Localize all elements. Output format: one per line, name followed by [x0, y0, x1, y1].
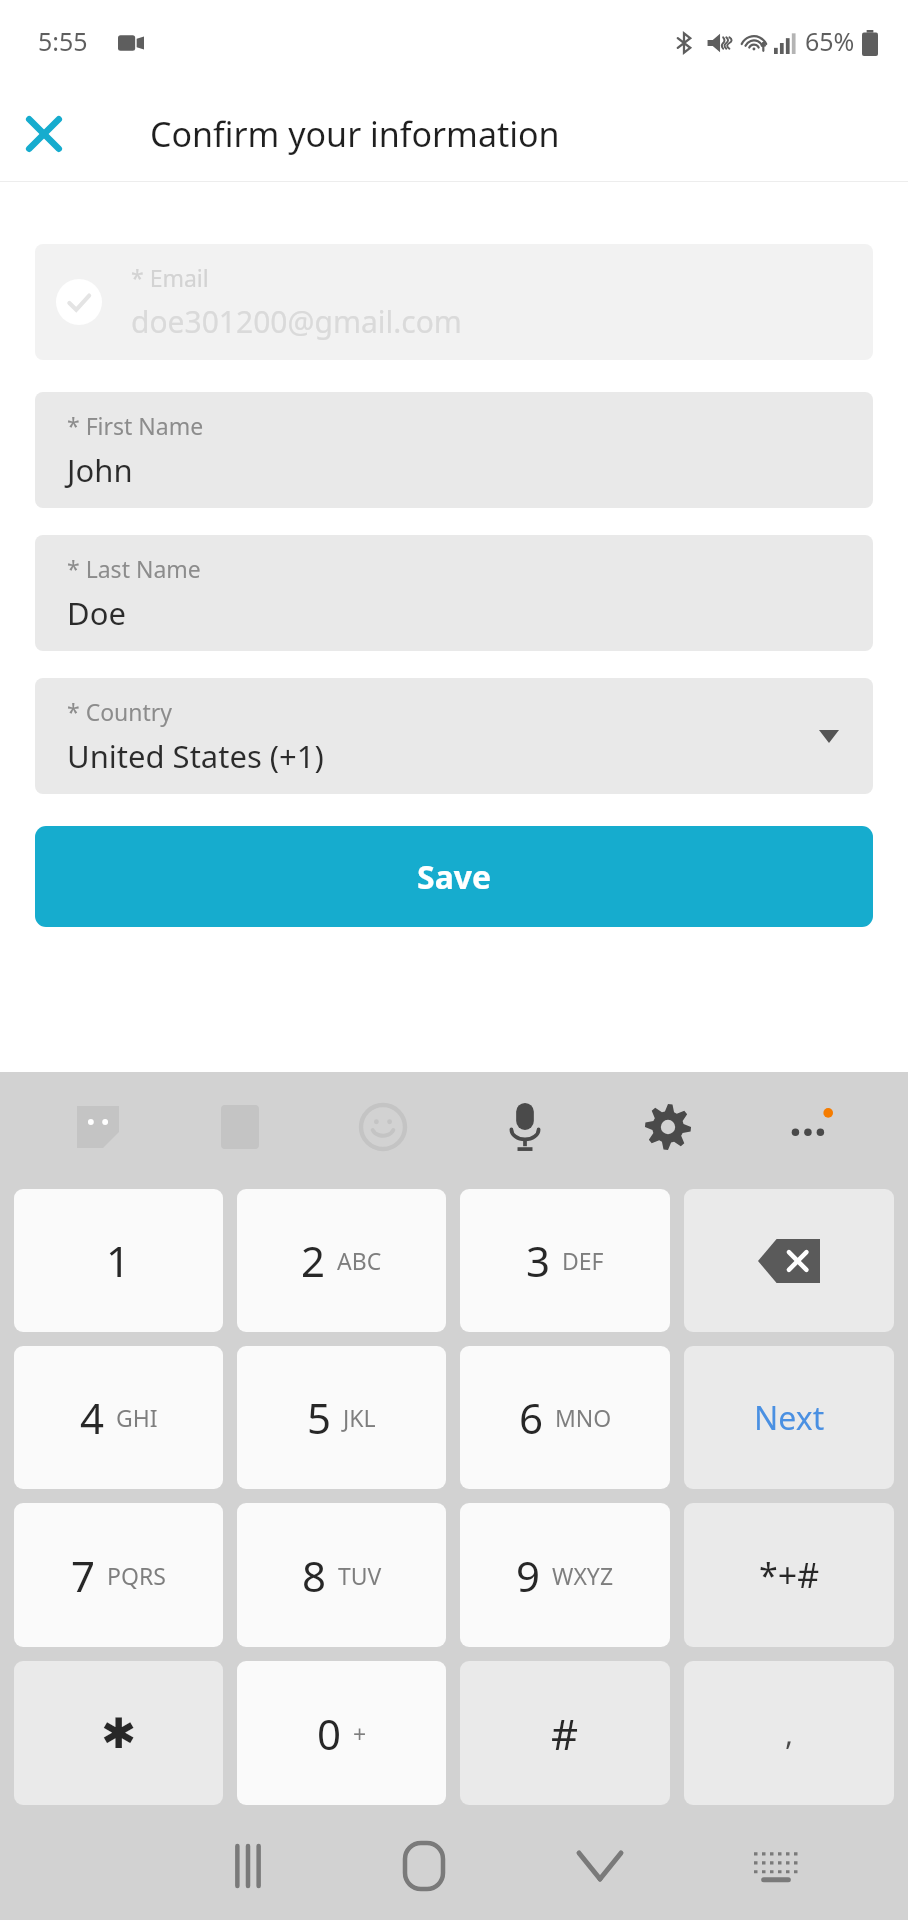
button[interactable]: GIF — [195, 1082, 285, 1172]
staticText: Doe — [67, 592, 126, 634]
button[interactable]: 9 — [460, 1503, 670, 1647]
button[interactable]: 8 — [237, 1503, 446, 1647]
staticText: 2 — [301, 1232, 326, 1289]
button[interactable]: Next — [684, 1346, 894, 1489]
staticText: 8 — [302, 1547, 327, 1604]
staticText: 65% — [805, 24, 855, 58]
button[interactable]: * Last Name — [35, 535, 873, 651]
staticText: PQRS — [107, 1560, 166, 1591]
button[interactable]: 3 — [460, 1189, 670, 1332]
staticText: DEF — [562, 1245, 604, 1276]
button[interactable]: 6 — [460, 1346, 670, 1489]
staticText: Save — [417, 855, 492, 899]
button[interactable]: * Email — [35, 244, 873, 360]
button[interactable]: Stickers — [53, 1082, 143, 1172]
button[interactable]: 2 — [237, 1189, 446, 1332]
staticText: ABC — [337, 1245, 382, 1276]
staticText: 3 — [526, 1232, 551, 1289]
staticText: TUV — [338, 1560, 382, 1591]
staticText: *+# — [759, 1552, 820, 1598]
staticText: * Country — [67, 696, 173, 727]
button[interactable]: More options — [765, 1082, 855, 1172]
staticText: 4 — [80, 1389, 105, 1446]
staticText: United States (+1) — [67, 735, 324, 777]
staticText: John — [67, 449, 133, 491]
button[interactable]: Emoji — [338, 1082, 428, 1172]
staticText: 5:55 — [38, 24, 88, 58]
staticText: 6 — [519, 1389, 544, 1446]
staticText: # — [551, 1705, 579, 1762]
button[interactable]: 7 — [14, 1503, 223, 1647]
staticText: Confirm your information — [150, 111, 560, 157]
staticText: 5 — [307, 1389, 332, 1446]
button[interactable]: * Country — [35, 678, 873, 794]
button[interactable]: Keyboard settings — [623, 1082, 713, 1172]
staticText: 1 — [106, 1232, 131, 1289]
button[interactable]: *+# — [684, 1503, 894, 1647]
button[interactable]: # — [460, 1661, 670, 1805]
staticText: , — [785, 1713, 794, 1754]
button[interactable]: , — [684, 1661, 894, 1805]
staticText: * First Name — [67, 410, 204, 441]
staticText: * Last Name — [67, 553, 201, 584]
staticText: + — [353, 1718, 367, 1749]
button[interactable]: Home — [336, 1812, 512, 1920]
staticText: 9 — [516, 1547, 541, 1604]
staticText: * Email — [131, 262, 209, 293]
button[interactable]: Hide keyboard — [512, 1812, 688, 1920]
button[interactable]: 4 — [14, 1346, 223, 1489]
button[interactable]: 0 — [237, 1661, 446, 1805]
button[interactable]: Save — [35, 826, 873, 927]
staticText: Next — [754, 1396, 825, 1440]
staticText: 7 — [71, 1547, 96, 1604]
staticText: GHI — [116, 1402, 158, 1433]
button[interactable]: 5 — [237, 1346, 446, 1489]
staticText: ✱ — [101, 1709, 137, 1758]
button[interactable]: Change keyboard — [688, 1812, 864, 1920]
button[interactable]: ✱ — [14, 1661, 223, 1805]
staticText: JKL — [343, 1402, 376, 1433]
button[interactable]: 1 — [14, 1189, 223, 1332]
button[interactable]: Backspace — [684, 1189, 894, 1332]
staticText: WXYZ — [552, 1560, 614, 1591]
staticText: 0 — [317, 1705, 342, 1762]
button[interactable]: Close — [8, 98, 80, 170]
staticText: doe301200@gmail.com — [131, 301, 462, 342]
button[interactable]: Recent apps — [160, 1812, 336, 1920]
staticText: MNO — [555, 1402, 612, 1433]
button[interactable]: * First Name — [35, 392, 873, 508]
button[interactable]: Voice input — [480, 1082, 570, 1172]
